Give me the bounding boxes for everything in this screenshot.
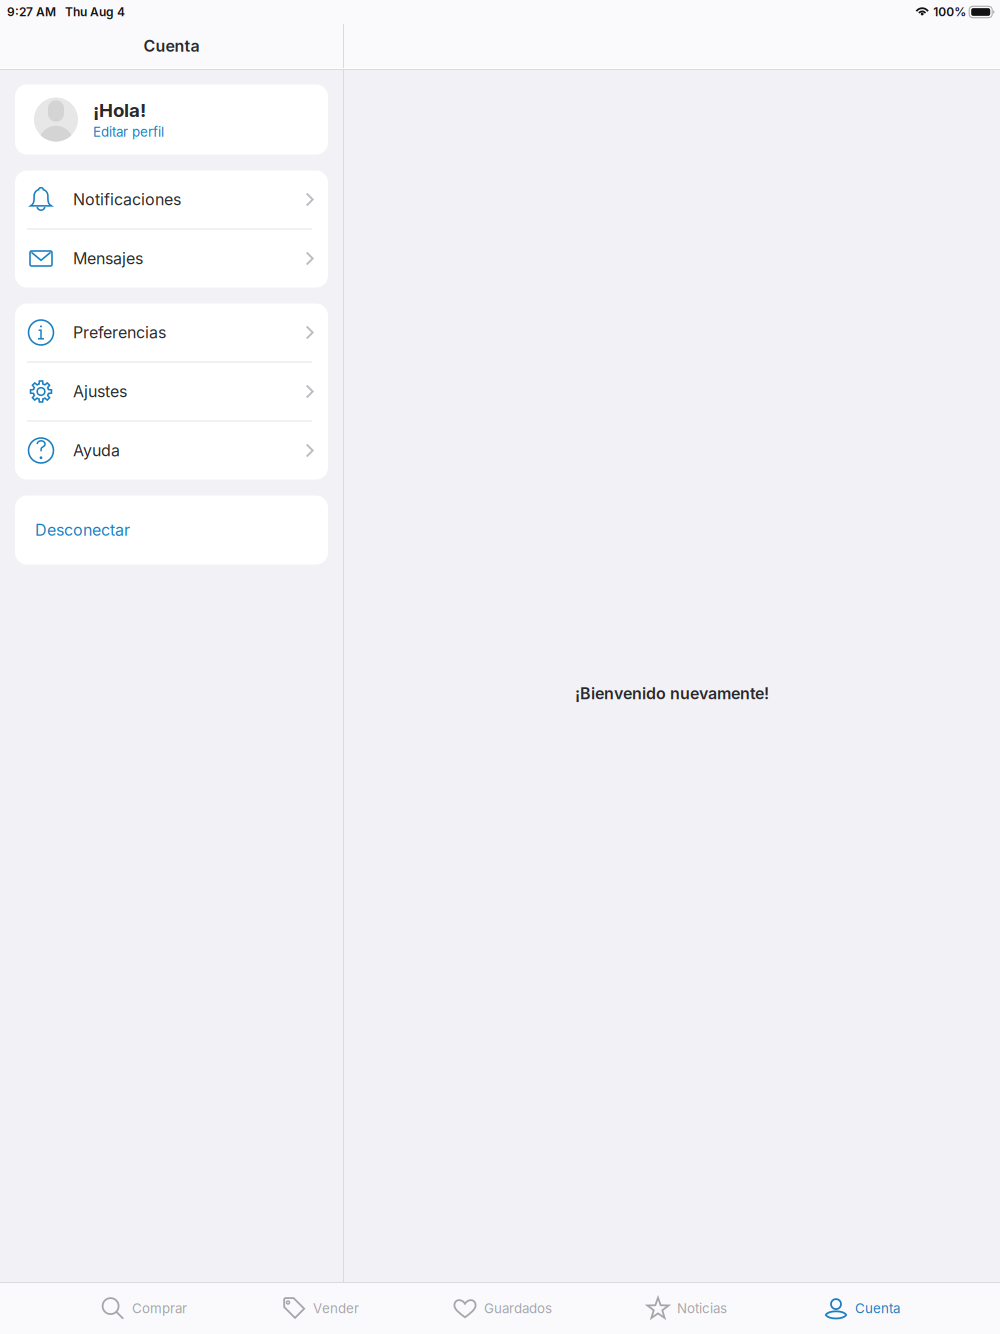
button[interactable]: Vender [282,1283,453,1334]
staticText: Mensajes [73,249,143,268]
staticText: Noticias [677,1301,727,1316]
button[interactable]: Comprar [101,1283,282,1334]
button[interactable]: Mensajes [15,229,328,287]
button[interactable]: Desconectar [15,495,328,564]
button[interactable]: Notificaciones [15,170,328,228]
staticText: Thu Aug 4 [65,5,125,19]
staticText: ¡Hola! [93,99,146,121]
staticText: Ajustes [73,382,127,401]
button[interactable]: Preferencias [15,303,328,361]
staticText: Guardados [484,1301,552,1316]
staticText: Desconectar [35,521,130,539]
button[interactable]: Noticias [646,1283,824,1334]
button[interactable]: Cuenta [824,1283,1000,1334]
staticText: Cuenta [855,1301,900,1316]
staticText: 100% [933,5,966,19]
staticText: Vender [313,1301,359,1316]
button[interactable]: ¡Hola! [15,84,328,154]
staticText: Notificaciones [73,190,181,209]
staticText: Cuenta [143,37,199,55]
button[interactable]: Guardados [453,1283,646,1334]
staticText: Comprar [132,1301,187,1316]
button[interactable]: Ajustes [15,362,328,420]
staticText: Preferencias [73,323,166,342]
staticText: Editar perfil [93,124,164,140]
staticText: ¡Bienvenido nuevamente! [575,684,769,703]
button[interactable]: Ayuda [15,421,328,479]
staticText: 9:27 AM [7,5,56,19]
staticText: Ayuda [73,441,120,460]
